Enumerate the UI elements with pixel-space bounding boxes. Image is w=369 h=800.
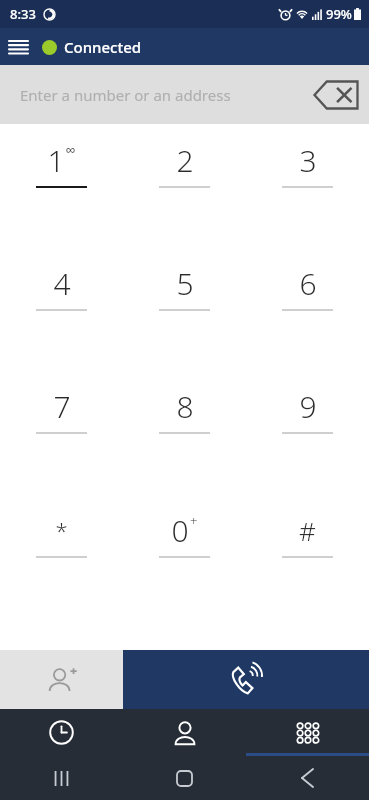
staticText: Connected [64, 37, 142, 57]
staticText: * [55, 515, 68, 545]
button[interactable]: Backspace [310, 69, 362, 121]
button[interactable]: 6 [246, 261, 369, 384]
staticText: 9 [299, 386, 317, 427]
staticText: 6 [299, 263, 317, 304]
button[interactable]: * [0, 508, 123, 632]
button[interactable]: Menu [0, 29, 36, 65]
staticText: 3 [299, 140, 317, 181]
staticText: 99% [326, 5, 352, 23]
staticText: 8:33 [10, 5, 36, 23]
staticText: 2 [176, 140, 194, 181]
staticText: # [299, 513, 316, 548]
button[interactable]: Back [246, 756, 369, 800]
button[interactable]: 4 [0, 261, 123, 384]
staticText: 7 [53, 386, 71, 427]
button[interactable]: 9 [246, 384, 369, 508]
button[interactable]: 1 [0, 138, 123, 261]
button[interactable]: Recent apps [0, 756, 123, 800]
staticText: 1 [47, 140, 65, 181]
button[interactable]: Recents [0, 709, 123, 756]
button[interactable]: 3 [246, 138, 369, 261]
staticText: 4 [53, 263, 71, 304]
button[interactable]: 8 [123, 384, 246, 508]
button[interactable]: Home [123, 756, 246, 800]
staticText: 8 [176, 386, 194, 427]
button[interactable]: Keypad [246, 709, 369, 756]
staticText: ∞ [66, 142, 76, 157]
button[interactable]: 7 [0, 384, 123, 508]
button[interactable]: # [246, 508, 369, 632]
button[interactable]: 2 [123, 138, 246, 261]
staticText: 0 [171, 510, 189, 551]
button[interactable]: Call [123, 650, 369, 709]
staticText: + [190, 512, 198, 530]
staticText: 5 [176, 263, 194, 304]
staticText: Enter a number or an address [20, 85, 231, 105]
button[interactable]: Contacts [123, 709, 246, 756]
button[interactable]: 5 [123, 261, 246, 384]
button[interactable]: 0 [123, 508, 246, 632]
button[interactable]: Add contact [0, 650, 123, 709]
